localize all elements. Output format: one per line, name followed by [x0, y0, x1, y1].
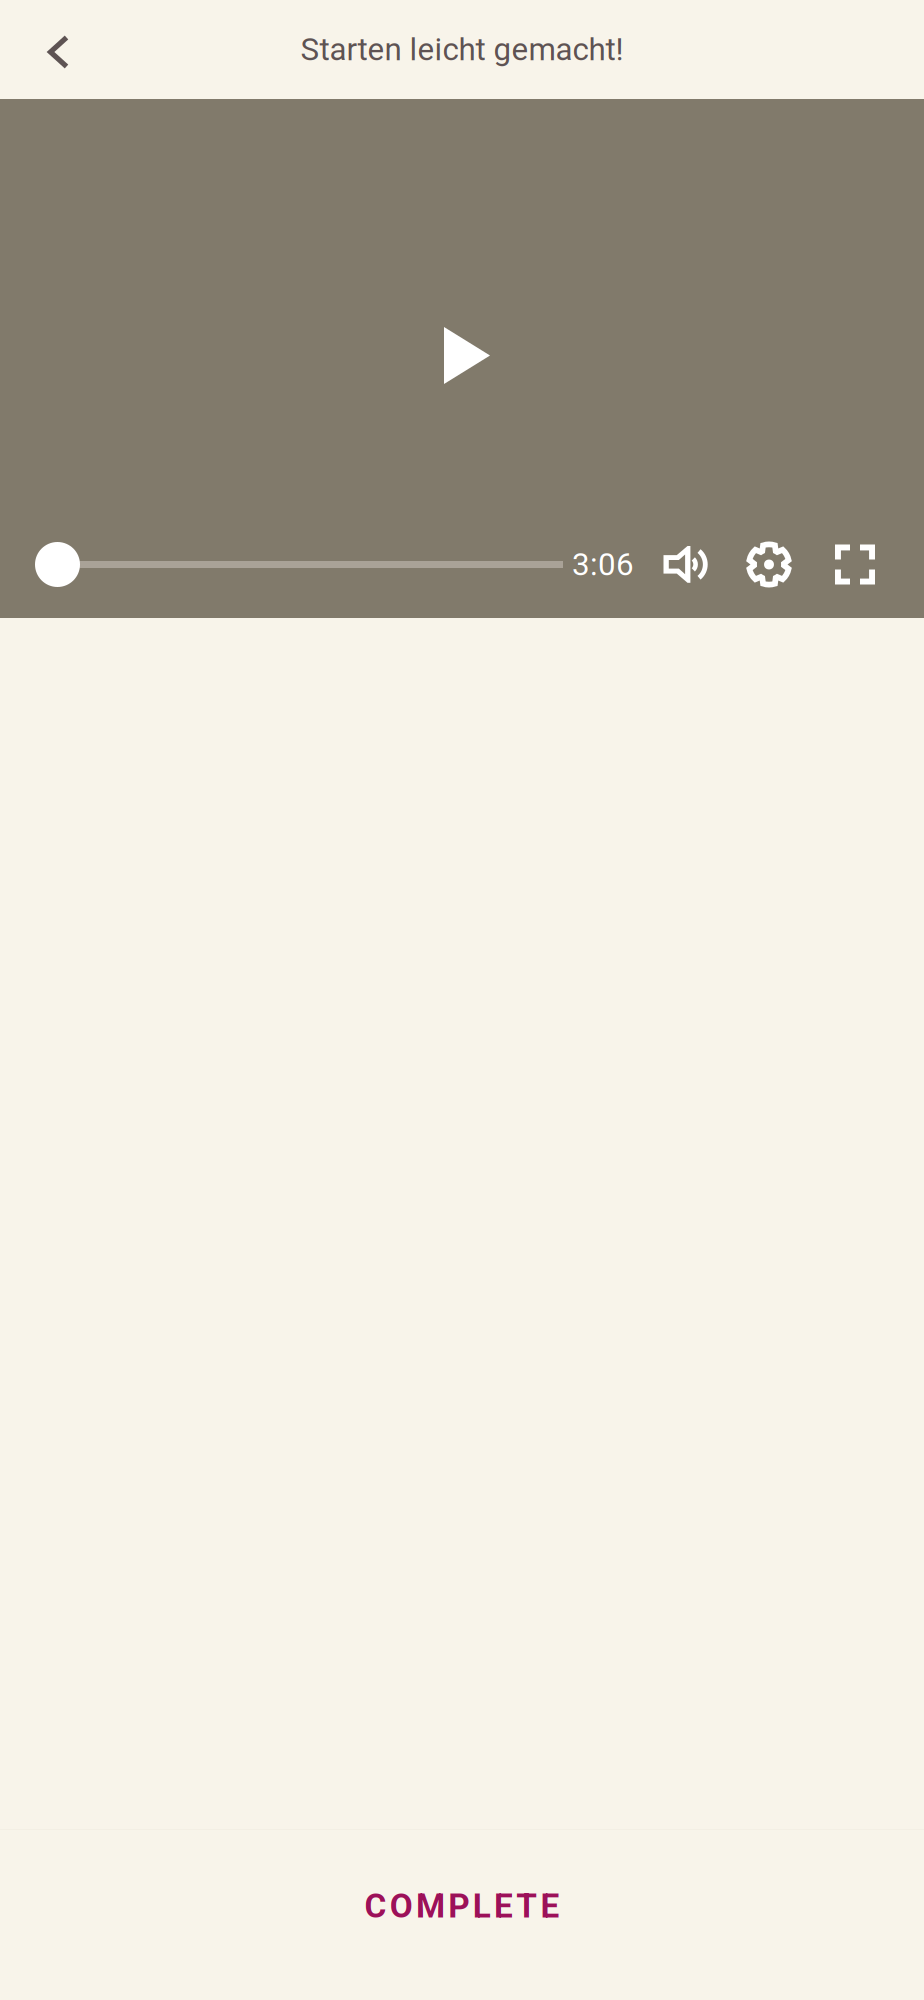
button[interactable]: Mute	[656, 535, 716, 593]
staticText: 3:06	[572, 546, 634, 583]
button[interactable]: COMPLETE	[0, 1830, 924, 2000]
button[interactable]: Playback position	[35, 541, 563, 588]
staticText: COMPLETE	[364, 1886, 560, 1926]
button[interactable]: Full screen	[826, 535, 884, 593]
button[interactable]: Back	[0, 0, 114, 99]
staticText: Starten leicht gemacht!	[300, 31, 623, 68]
button[interactable]: Play	[407, 295, 527, 415]
button[interactable]: Settings	[740, 535, 798, 593]
